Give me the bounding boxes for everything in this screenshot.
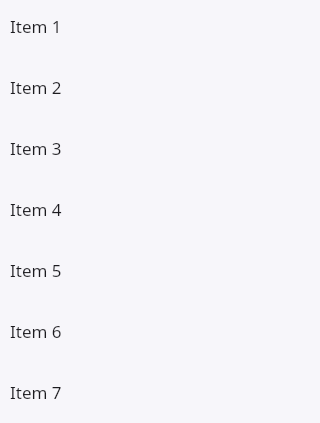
staticText: Item 4 bbox=[10, 198, 62, 221]
button[interactable]: Item 5 bbox=[0, 244, 320, 305]
staticText: Item 7 bbox=[10, 381, 62, 404]
staticText: Item 6 bbox=[10, 320, 62, 343]
button[interactable]: Item 3 bbox=[0, 122, 320, 183]
staticText: Item 1 bbox=[10, 15, 62, 38]
button[interactable]: Item 7 bbox=[0, 366, 320, 423]
staticText: Item 5 bbox=[10, 259, 62, 282]
button[interactable]: Item 1 bbox=[0, 0, 320, 61]
button[interactable]: Item 2 bbox=[0, 61, 320, 122]
staticText: Item 3 bbox=[10, 137, 62, 160]
staticText: Item 2 bbox=[10, 76, 62, 99]
button[interactable]: Item 4 bbox=[0, 183, 320, 244]
button[interactable]: Item 6 bbox=[0, 305, 320, 366]
